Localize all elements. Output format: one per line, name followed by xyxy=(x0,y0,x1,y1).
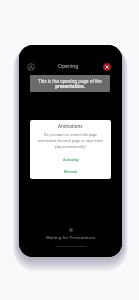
staticText: Autoplay xyxy=(63,157,79,162)
button[interactable]: Autoplay xyxy=(30,153,111,165)
staticText: Manual xyxy=(64,169,78,174)
staticText: This is the opening page of the presenta… xyxy=(35,78,105,89)
button[interactable]: Close xyxy=(103,63,111,71)
staticText: Do you want to control the page animatio… xyxy=(38,132,103,149)
button[interactable]: This is the opening page of the presenta… xyxy=(30,75,110,92)
button[interactable]: Manual xyxy=(30,165,111,177)
button[interactable]: Account xyxy=(27,63,35,71)
staticText: Waiting for Presentation xyxy=(46,234,96,240)
staticText: Animations xyxy=(58,123,83,129)
staticText: Opening xyxy=(58,63,79,70)
